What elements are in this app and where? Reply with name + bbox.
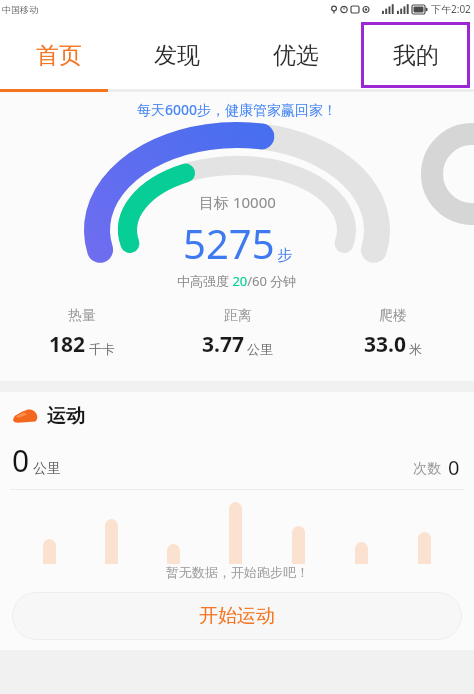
button[interactable]: 发现 — [118, 18, 236, 92]
staticText: 下午2:02 — [431, 2, 471, 16]
button[interactable]: 首页 — [0, 18, 118, 92]
staticText: 我的 — [393, 41, 439, 70]
staticText: 首页 — [36, 41, 82, 70]
staticText: 优选 — [273, 41, 319, 70]
button[interactable]: 运动 — [12, 404, 474, 428]
staticText: 距离 — [224, 307, 252, 325]
button[interactable]: 热量 — [4, 307, 160, 359]
staticText: 米 — [409, 341, 422, 357]
staticText: 运动 — [47, 404, 85, 428]
button[interactable]: 距离 — [160, 307, 315, 359]
button[interactable]: 优选 — [236, 18, 355, 92]
staticText: 公里 — [247, 341, 273, 357]
staticText: 182 — [49, 330, 86, 359]
staticText: 0 — [448, 454, 460, 481]
staticText: 次数 — [413, 460, 441, 478]
staticText: 步 — [277, 246, 292, 265]
staticText: 每天6000步，健康管家赢回家！ — [137, 100, 338, 119]
button[interactable]: 我的 — [361, 22, 470, 88]
staticText: 发现 — [154, 41, 200, 70]
staticText: 千卡 — [89, 341, 115, 357]
staticText: 暂无数据，开始跑步吧！ — [166, 564, 309, 580]
staticText: 中高强度 20/60 分钟 — [177, 272, 297, 290]
staticText: 公里 — [33, 460, 61, 478]
button[interactable]: 爬楼 — [315, 307, 470, 359]
staticText: 爬楼 — [379, 307, 407, 325]
staticText: 开始运动 — [199, 604, 275, 628]
button[interactable]: 开始运动 — [12, 592, 462, 640]
staticText: 3.77 — [202, 330, 244, 359]
staticText: 目标 10000 — [199, 192, 276, 212]
staticText: 热量 — [68, 307, 96, 325]
button[interactable]: 每天6000步，健康管家赢回家！ — [0, 100, 474, 119]
staticText: 5275 — [183, 216, 275, 270]
staticText: 0 — [12, 440, 30, 481]
staticText: 33.0 — [364, 330, 406, 359]
staticText: 中国移动 — [2, 4, 38, 15]
